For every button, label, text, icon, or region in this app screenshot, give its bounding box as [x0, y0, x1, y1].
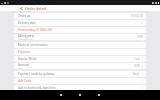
staticText: Invoice Mode — [18, 57, 37, 61]
button[interactable]: Back — [19, 6, 23, 10]
staticText: Payment — [18, 50, 31, 54]
staticText: Delivery date — [18, 21, 36, 25]
staticText: customer - 001 — [18, 38, 34, 40]
staticText: USD — [18, 67, 23, 69]
button[interactable]: Add Code — [14, 78, 146, 84]
button[interactable]: Add to location & date/time — [14, 85, 146, 91]
button[interactable]: Billing party — [14, 34, 146, 40]
staticText: Outstanding of 1500 USD — [18, 28, 53, 32]
staticText: Order no. — [18, 14, 32, 18]
staticText: Add Code — [18, 79, 32, 83]
staticText: 2300 — [137, 35, 143, 39]
button[interactable]: Order no. — [14, 13, 146, 19]
button[interactable]: Payment — [14, 49, 146, 55]
button[interactable]: Invoice Mode — [14, 56, 146, 62]
staticText: Add to location & date/time — [18, 86, 56, 90]
staticText: 2000 — [134, 64, 140, 68]
button[interactable]: Delivery date — [14, 20, 146, 26]
button[interactable]: Payment mode by gateway — [14, 71, 146, 77]
staticText: Bank — [133, 72, 140, 76]
staticText: Payment mode by gateway — [18, 72, 55, 76]
staticText: Amount — [18, 63, 29, 67]
staticText: #1023-2A — [131, 14, 143, 18]
button[interactable]: Mode of conversation — [14, 42, 146, 48]
staticText: Billing party — [18, 34, 35, 38]
button[interactable]: Outstanding of 1500 USD — [14, 27, 146, 33]
staticText: Cash — [134, 57, 140, 61]
staticText: Order detail — [25, 6, 46, 11]
button[interactable]: Amount — [14, 63, 146, 69]
staticText: Mode of conversation — [18, 43, 48, 47]
